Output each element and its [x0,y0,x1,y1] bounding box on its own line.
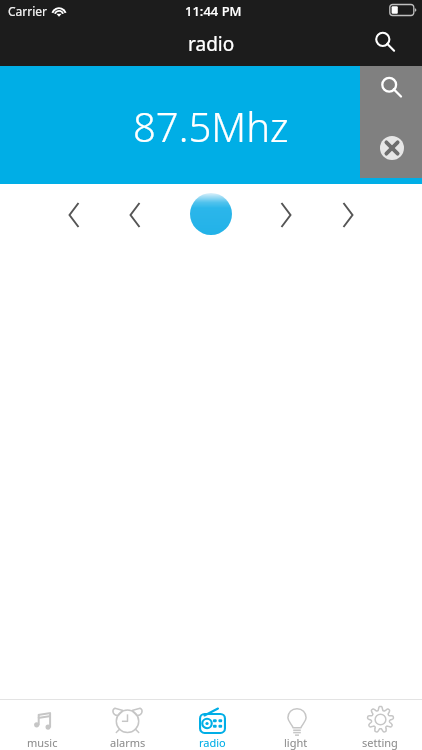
staticText: music [27,735,58,750]
button[interactable]: Tune [190,193,232,235]
button[interactable]: Next station [330,197,366,233]
button[interactable]: music [0,700,85,750]
button[interactable]: Search station [360,66,422,120]
button[interactable]: light [254,700,338,750]
button[interactable]: Search [363,24,407,66]
button[interactable]: Close [360,120,422,178]
button[interactable]: radio [170,700,254,750]
staticText: radio [199,735,226,750]
staticText: 11:44 PM [185,2,242,20]
button[interactable]: Previous station [56,197,92,233]
button[interactable]: Step forward [268,197,304,233]
button[interactable]: setting [338,700,422,750]
staticText: 87.5Mhz [133,99,289,153]
staticText: setting [362,735,398,750]
button[interactable]: alarms [85,700,170,750]
staticText: radio [188,31,235,57]
button[interactable]: Step back [117,197,153,233]
staticText: alarms [110,735,146,750]
staticText: light [284,735,308,750]
staticText: Carrier [8,3,48,19]
